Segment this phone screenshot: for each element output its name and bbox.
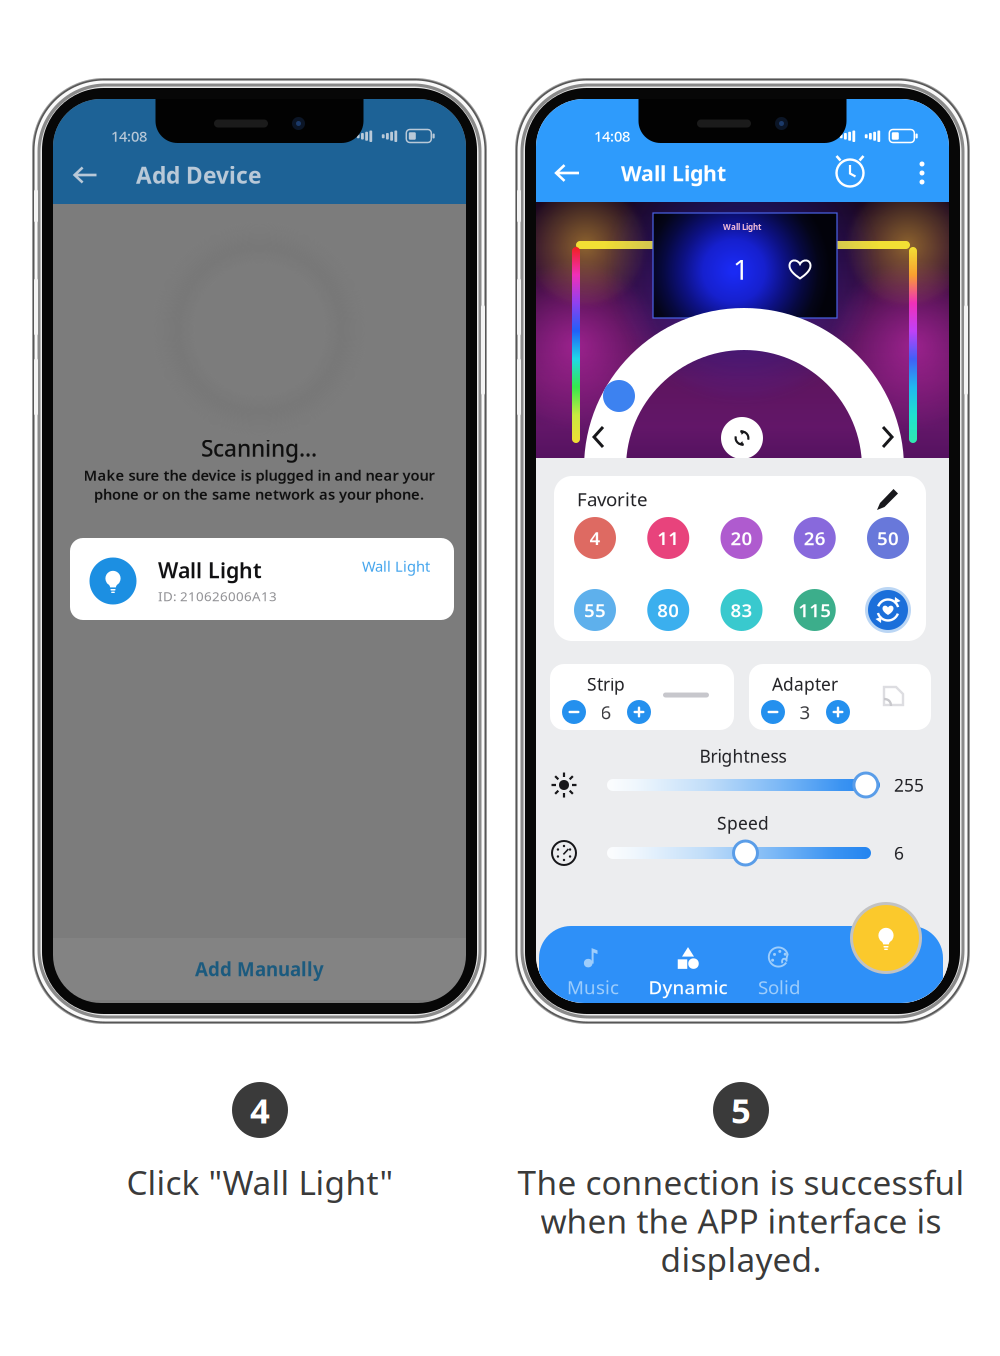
button[interactable]: Increase Adapter <box>823 697 853 727</box>
staticText: 14:08 <box>111 126 147 146</box>
staticText: 83 <box>730 598 752 622</box>
button[interactable]: Power <box>850 902 922 974</box>
button[interactable]: Shuffle effect <box>721 417 763 459</box>
staticText: Click "Wall Light" <box>126 1160 393 1204</box>
button[interactable]: Solid <box>731 946 827 998</box>
staticText: Dynamic <box>648 975 727 999</box>
staticText: Music <box>567 975 619 999</box>
button[interactable]: Back <box>57 150 113 200</box>
staticText: 55 <box>584 598 606 622</box>
staticText: Favorite <box>577 487 648 511</box>
staticText: 11 <box>657 526 679 550</box>
staticText: 255 <box>894 773 924 796</box>
staticText: 4 <box>250 1087 270 1133</box>
staticText: Speed <box>717 811 769 834</box>
staticText: 50 <box>877 526 899 550</box>
staticText: ID: 210626006A13 <box>158 587 277 605</box>
staticText: Adapter <box>772 672 838 695</box>
staticText: Solid <box>758 975 800 999</box>
staticText: Wall Light <box>723 222 761 232</box>
staticText: 5 <box>731 1087 751 1133</box>
staticText: phone or on the same network as your pho… <box>94 484 424 504</box>
button[interactable]: Increase Strip <box>624 697 654 727</box>
button[interactable]: Decrease Strip <box>559 697 589 727</box>
staticText: Wall Light <box>621 159 726 187</box>
staticText: 20 <box>730 526 752 550</box>
staticText: Make sure the device is plugged in and n… <box>83 465 434 485</box>
staticText: The connection is successful <box>517 1160 964 1204</box>
staticText: Add Manually <box>195 957 324 981</box>
button[interactable]: 26 <box>794 517 836 559</box>
button[interactable]: Add Manually <box>53 938 466 1000</box>
staticText: Strip <box>587 672 625 695</box>
staticText: Add Device <box>136 160 262 190</box>
button[interactable]: Back <box>539 148 595 198</box>
button[interactable]: 55 <box>574 589 616 631</box>
staticText: Wall Light <box>362 556 430 576</box>
button[interactable]: Edit favorites <box>874 485 902 513</box>
staticText: 115 <box>798 598 831 622</box>
staticText: displayed. <box>660 1237 821 1281</box>
staticText: 6 <box>600 700 611 724</box>
button[interactable]: 83 <box>720 589 762 631</box>
button[interactable]: 11 <box>647 517 689 559</box>
staticText: Wall Light <box>158 556 262 584</box>
button[interactable]: Music <box>545 946 641 998</box>
staticText: 6 <box>894 841 904 864</box>
button[interactable]: Decrease Adapter <box>758 697 788 727</box>
button[interactable]: 4 <box>574 517 616 559</box>
button[interactable]: Dynamic <box>640 946 736 998</box>
button[interactable]: Timer <box>828 148 872 198</box>
staticText: 3 <box>799 700 810 724</box>
staticText: 26 <box>804 526 826 550</box>
button[interactable]: More options <box>909 148 935 198</box>
button[interactable]: 115 <box>794 589 836 631</box>
button[interactable]: Cycle favorites <box>865 587 911 633</box>
staticText: when the APP interface is <box>540 1198 941 1243</box>
staticText: 80 <box>657 598 679 622</box>
button[interactable]: Previous effect <box>579 417 619 457</box>
staticText: Scanning... <box>201 433 317 463</box>
button[interactable]: 20 <box>720 517 762 559</box>
staticText: 1 <box>733 250 749 288</box>
button[interactable]: 50 <box>867 517 909 559</box>
staticText: 14:08 <box>594 126 630 146</box>
button[interactable]: Next effect <box>867 417 907 457</box>
button[interactable]: 80 <box>647 589 689 631</box>
button[interactable]: Wall Light <box>70 538 454 620</box>
staticText: 4 <box>589 526 600 550</box>
staticText: Brightness <box>699 744 786 767</box>
